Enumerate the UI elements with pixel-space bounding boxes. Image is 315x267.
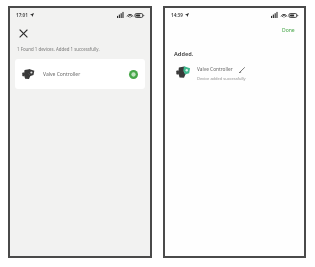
button[interactable]: Valve Controller — [176, 64, 296, 81]
staticText: Device added successfully — [197, 76, 246, 81]
staticText: Done — [282, 27, 295, 34]
staticText: Valve Controller — [43, 71, 81, 78]
staticText: 14:39 — [171, 12, 183, 18]
staticText: 1 Found 1 devices. Added 1 successfully. — [17, 46, 100, 52]
button[interactable]: Valve Controller — [15, 59, 145, 89]
staticText: 17:01 — [16, 12, 28, 18]
button[interactable]: Close — [15, 25, 31, 41]
staticText: Added. — [174, 50, 194, 58]
button[interactable]: Rename device — [238, 66, 245, 73]
staticText: Valve Controller — [197, 66, 233, 73]
button[interactable]: Added successfully — [129, 70, 138, 79]
button[interactable]: Done — [280, 25, 297, 36]
